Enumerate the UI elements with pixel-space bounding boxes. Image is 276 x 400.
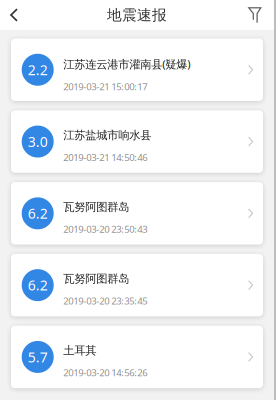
button[interactable]: 5.7 <box>11 326 263 388</box>
button[interactable]: 2.2 <box>11 38 263 101</box>
button[interactable]: 3.0 <box>11 110 263 173</box>
staticText: 2019-03-20 23:35:45 <box>63 294 147 307</box>
staticText: 2019-03-20 14:56:26 <box>63 366 147 379</box>
staticText: 江苏盐城市响水县 <box>63 128 151 142</box>
staticText: 土耳其 <box>63 343 96 358</box>
button[interactable]: Back <box>0 0 28 30</box>
staticText: 瓦努阿图群岛 <box>63 200 129 214</box>
staticText: 江苏连云港市灌南县(疑爆) <box>63 56 190 72</box>
staticText: 2.2 <box>28 60 48 79</box>
button[interactable]: 6.2 <box>11 182 263 245</box>
button[interactable]: Filter <box>241 0 269 30</box>
button[interactable]: 6.2 <box>11 254 263 316</box>
staticText: 5.7 <box>28 347 48 366</box>
staticText: 3.0 <box>28 132 48 151</box>
staticText: 6.2 <box>28 204 48 223</box>
staticText: 2019-03-21 15:00:17 <box>63 80 147 93</box>
staticText: 地震速报 <box>107 6 167 24</box>
staticText: 瓦努阿图群岛 <box>63 272 129 286</box>
staticText: 2019-03-21 14:50:46 <box>63 151 147 164</box>
staticText: 6.2 <box>28 276 48 295</box>
staticText: 2019-03-20 23:50:43 <box>63 222 147 235</box>
